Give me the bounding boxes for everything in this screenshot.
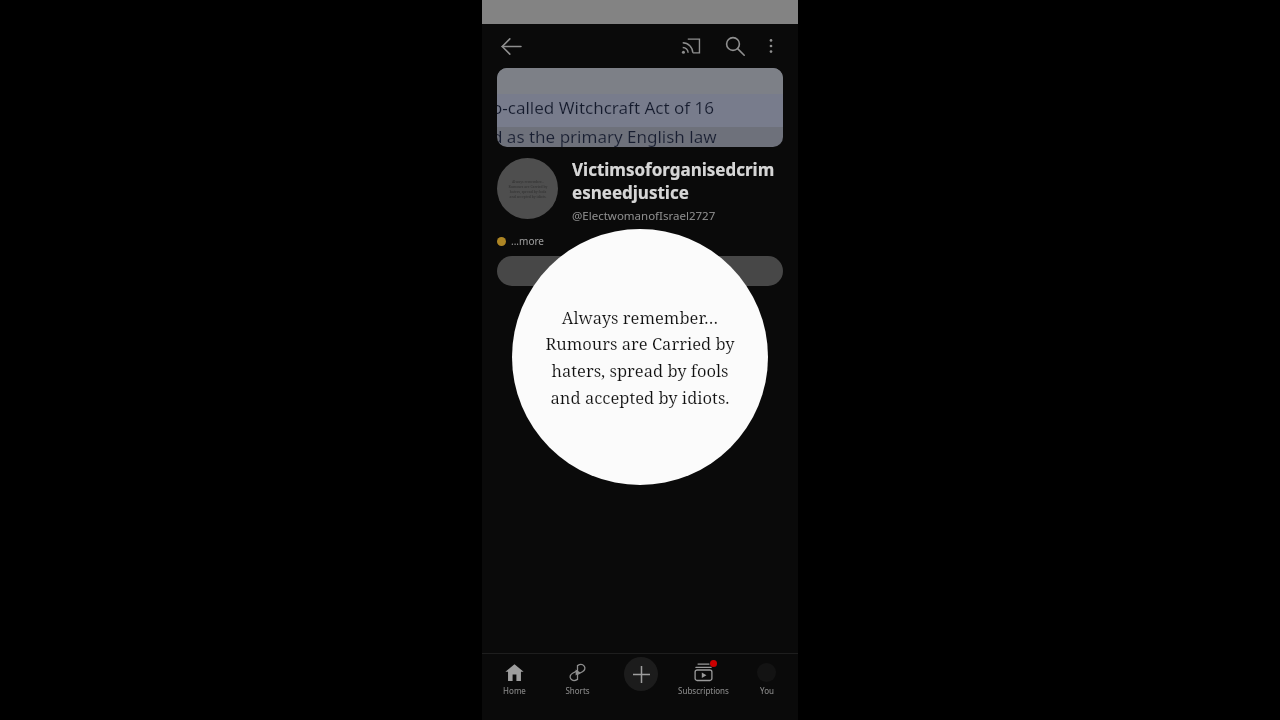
staticText: d as the primary English law <box>497 125 717 147</box>
button[interactable]: Create <box>609 654 672 702</box>
button[interactable] <box>497 256 783 286</box>
staticText: Always remember… Rumours are Carried by … <box>524 306 756 409</box>
staticText: Subscriptions <box>678 685 729 696</box>
staticText: This channel doesn't have any content <box>482 439 798 452</box>
button[interactable]: More options <box>756 31 786 61</box>
staticText: Shorts <box>565 685 590 696</box>
staticText: ...more <box>511 234 545 248</box>
button[interactable]: Cast <box>674 29 708 63</box>
button[interactable]: Shorts <box>546 654 609 702</box>
staticText: Victimsoforganisedcrimesneedjustice <box>572 158 783 204</box>
button[interactable]: ...more <box>497 234 545 248</box>
staticText: You <box>760 685 774 696</box>
staticText: Always remember… Rumours are Carried by … <box>500 179 556 199</box>
staticText: @ElectwomanofIsrael2727 <box>572 208 716 224</box>
button[interactable]: o-called Witchcraft Act of 16 <box>497 68 783 147</box>
staticText: o-called Witchcraft Act of 16 <box>497 96 715 119</box>
button[interactable]: Search <box>718 29 752 63</box>
button[interactable]: Home <box>482 654 546 702</box>
button[interactable]: Subscriptions <box>672 654 735 702</box>
button[interactable]: Channel avatar <box>497 158 558 219</box>
button[interactable]: Back <box>494 29 528 63</box>
button[interactable]: You <box>735 654 798 702</box>
staticText: Home <box>503 685 526 696</box>
